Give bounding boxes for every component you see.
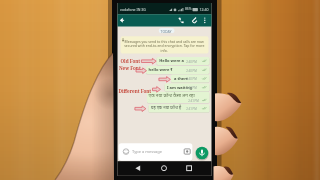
button[interactable]: Back bbox=[119, 14, 130, 26]
button[interactable]: Back bbox=[130, 162, 146, 176]
button[interactable]: Home bbox=[156, 162, 172, 176]
button[interactable]: Voice call bbox=[175, 14, 187, 26]
button[interactable]: Send voice message bbox=[196, 147, 209, 160]
button[interactable]: Recent apps bbox=[181, 162, 197, 176]
button[interactable]: Type a message bbox=[119, 143, 193, 161]
button[interactable]: Attach bbox=[187, 14, 199, 26]
button[interactable]: More options bbox=[199, 14, 210, 26]
